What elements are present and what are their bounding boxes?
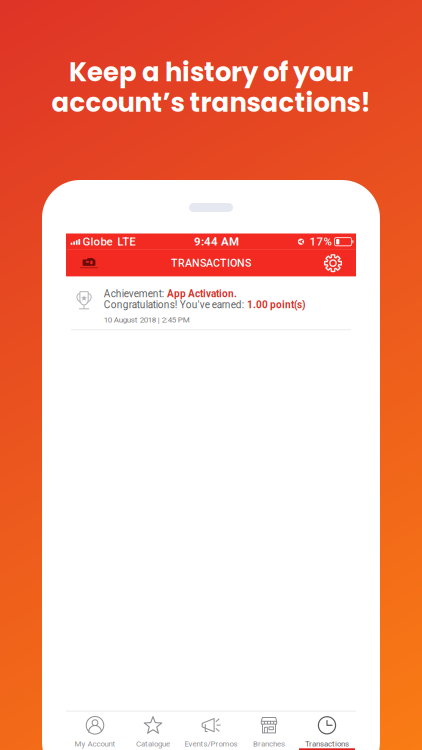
button[interactable]: Transactions bbox=[298, 711, 356, 750]
staticText: 17% bbox=[309, 235, 331, 248]
staticText: Branches bbox=[253, 739, 285, 748]
staticText: Globe bbox=[82, 235, 112, 248]
button[interactable]: My Account bbox=[66, 711, 124, 750]
staticText: Congratulations! You've earned: bbox=[104, 299, 244, 311]
button[interactable]: Achievement: bbox=[66, 276, 356, 330]
staticText: App Activation. bbox=[167, 288, 237, 300]
staticText: Achievement: bbox=[104, 288, 164, 300]
staticText: 10 August 2018 | 2:45 PM bbox=[104, 315, 190, 324]
staticText: 1.00 point(s) bbox=[247, 299, 306, 311]
button[interactable]: Branches bbox=[240, 711, 298, 750]
staticText: My Account bbox=[74, 739, 115, 748]
staticText: Catalogue bbox=[136, 739, 170, 748]
staticText: account’s transactions! bbox=[51, 84, 370, 121]
button[interactable]: Catalogue bbox=[124, 711, 182, 750]
staticText: Transactions bbox=[305, 739, 349, 748]
staticText: Keep a history of your bbox=[69, 54, 353, 90]
staticText: LTE bbox=[117, 235, 135, 248]
staticText: Events/Promos bbox=[184, 739, 237, 748]
button[interactable]: Events/Promos bbox=[182, 711, 240, 750]
button[interactable]: Home bbox=[70, 250, 108, 276]
button[interactable]: Settings bbox=[318, 250, 348, 276]
staticText: TRANSACTIONS bbox=[171, 257, 251, 269]
staticText: 9:44 AM bbox=[194, 235, 239, 248]
